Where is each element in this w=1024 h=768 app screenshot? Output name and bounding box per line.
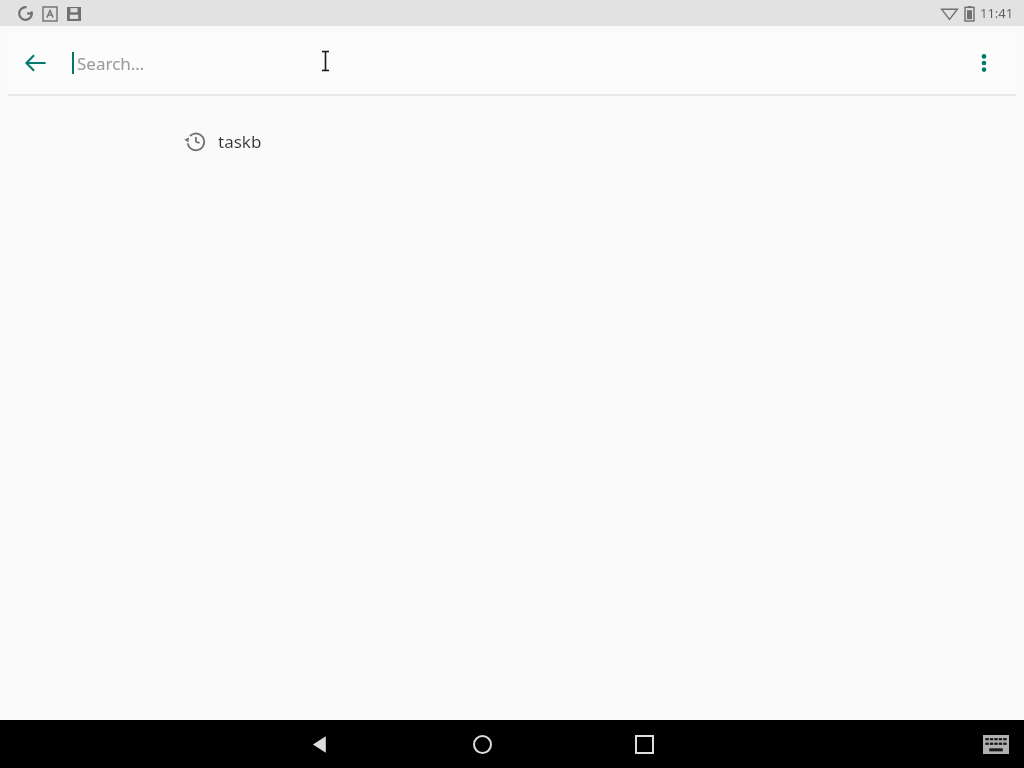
button[interactable]: taskb xyxy=(0,117,1024,165)
button[interactable]: Home xyxy=(450,720,514,768)
button[interactable]: More options xyxy=(956,35,1012,91)
button[interactable]: Recent apps xyxy=(612,720,676,768)
button[interactable]: Back xyxy=(288,720,352,768)
button[interactable]: Back xyxy=(8,35,64,91)
button[interactable]: Search… xyxy=(72,32,956,94)
button[interactable]: Switch keyboard xyxy=(972,720,1020,768)
staticText: Search… xyxy=(77,52,145,75)
staticText: taskb xyxy=(218,130,262,153)
staticText: 11:41 xyxy=(980,4,1014,22)
